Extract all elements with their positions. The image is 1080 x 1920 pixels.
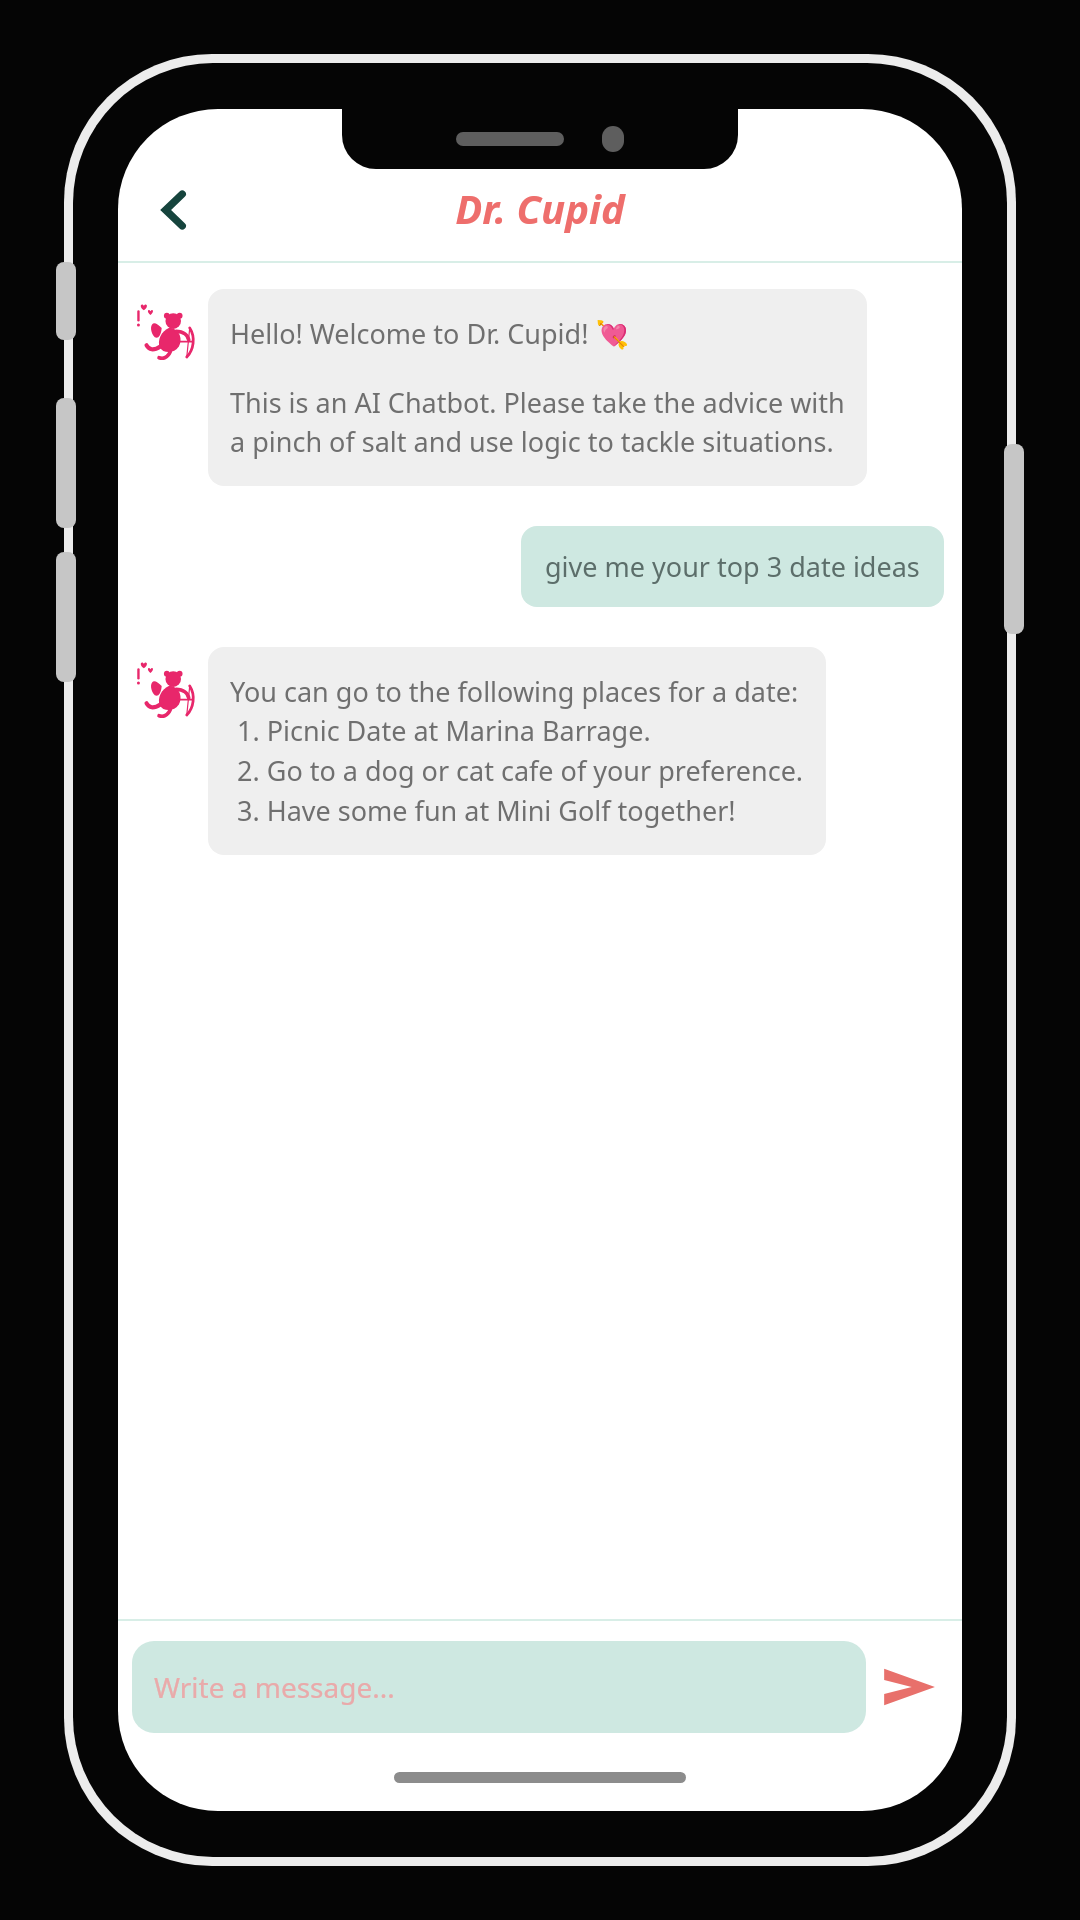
staticText: Dr. Cupid — [455, 181, 625, 235]
button[interactable]: Back — [138, 173, 212, 247]
staticText: Hello! Welcome to Dr. Cupid! 💘 — [230, 315, 630, 352]
staticText: You can go to the following places for a… — [230, 673, 804, 829]
button[interactable]: give me your top 3 date ideas — [521, 526, 944, 607]
staticText: give me your top 3 date ideas — [545, 548, 920, 585]
staticText: Write a message... — [154, 1668, 395, 1706]
button[interactable]: You can go to the following places for a… — [208, 647, 826, 855]
button[interactable]: Hello! Welcome to Dr. Cupid! 💘 — [208, 289, 867, 486]
staticText: This is an AI Chatbot. Please take the a… — [230, 384, 845, 460]
button[interactable]: Send — [866, 1644, 952, 1730]
button[interactable]: Write a message... — [132, 1641, 866, 1733]
